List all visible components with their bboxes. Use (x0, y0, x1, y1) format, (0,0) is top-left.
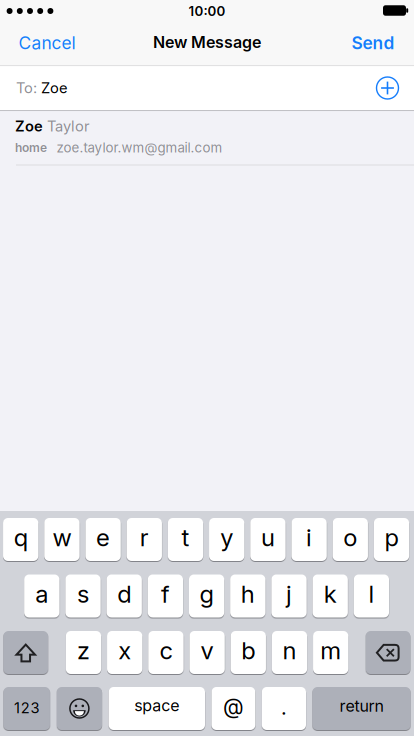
button[interactable]: Cancel (18, 33, 75, 53)
staticText: space (134, 696, 179, 715)
staticText: s (77, 580, 89, 608)
button[interactable]: s (65, 574, 101, 617)
button[interactable]: j (271, 574, 307, 617)
staticText: o (343, 523, 357, 552)
staticText: a (35, 580, 48, 608)
staticText: home (15, 141, 47, 155)
button[interactable]: h (230, 574, 265, 617)
staticText: To: (16, 79, 41, 97)
staticText: x (118, 636, 131, 665)
button[interactable]: . (262, 687, 306, 730)
staticText: return (339, 697, 383, 715)
staticText: Zoe (41, 79, 68, 97)
button[interactable]: b (231, 631, 266, 674)
staticText: y (220, 523, 233, 552)
staticText: Taylor (43, 117, 90, 135)
button[interactable]: Shift (3, 631, 48, 674)
staticText: n (282, 636, 296, 665)
button[interactable]: n (272, 631, 307, 674)
button[interactable]: t (168, 518, 203, 561)
button[interactable]: r (127, 518, 162, 561)
staticText: e (96, 523, 110, 552)
staticText: t (181, 523, 189, 552)
button[interactable]: g (189, 574, 224, 617)
button[interactable]: Zoe (0, 110, 414, 164)
button[interactable]: i (291, 518, 327, 561)
staticText: Cancel (18, 33, 75, 53)
button[interactable]: Delete (366, 631, 410, 674)
staticText: Send (351, 33, 394, 53)
staticText: i (306, 523, 312, 552)
staticText: m (320, 636, 341, 665)
button[interactable]: p (374, 518, 409, 561)
staticText: j (286, 580, 292, 608)
button[interactable]: Numbers (3, 687, 50, 730)
button[interactable]: To: (16, 66, 414, 110)
button[interactable]: @ (211, 687, 255, 730)
button[interactable]: l (354, 574, 389, 617)
button[interactable]: Add Contact (376, 77, 398, 99)
button[interactable]: y (209, 518, 244, 561)
staticText: w (52, 523, 71, 552)
staticText: New Message (153, 33, 261, 52)
button[interactable]: c (148, 631, 183, 674)
staticText: l (368, 580, 374, 608)
button[interactable]: a (24, 574, 59, 617)
button[interactable]: return (312, 687, 410, 730)
staticText: 10:00 (188, 3, 225, 19)
button[interactable]: Send (351, 33, 394, 53)
button[interactable]: space (109, 687, 205, 730)
staticText: c (159, 636, 172, 665)
staticText: r (140, 523, 149, 552)
staticText: d (117, 580, 131, 608)
staticText: Zoe (15, 117, 43, 135)
staticText: @ (223, 694, 244, 719)
button[interactable]: f (148, 574, 183, 617)
button[interactable]: v (189, 631, 225, 674)
button[interactable]: Emoji (57, 687, 102, 730)
staticText: q (14, 523, 28, 552)
button[interactable]: d (107, 574, 142, 617)
button[interactable]: q (3, 518, 38, 561)
staticText: zoe.taylor.wm@gmail.com (56, 140, 222, 155)
button[interactable]: o (333, 518, 368, 561)
staticText: . (281, 696, 287, 719)
staticText: 123 (14, 699, 39, 717)
button[interactable]: w (44, 518, 80, 561)
staticText: p (384, 523, 398, 552)
button[interactable]: x (107, 631, 142, 674)
staticText: h (241, 580, 255, 608)
staticText: b (241, 636, 255, 665)
staticText: v (201, 636, 214, 665)
button[interactable]: u (250, 518, 286, 561)
staticText: u (261, 523, 275, 552)
button[interactable]: m (313, 631, 348, 674)
staticText: g (200, 580, 214, 608)
button[interactable]: z (66, 631, 101, 674)
staticText: f (161, 580, 170, 608)
button[interactable]: e (85, 518, 121, 561)
button[interactable]: k (313, 574, 348, 617)
staticText: k (324, 580, 337, 608)
staticText: z (77, 636, 90, 665)
